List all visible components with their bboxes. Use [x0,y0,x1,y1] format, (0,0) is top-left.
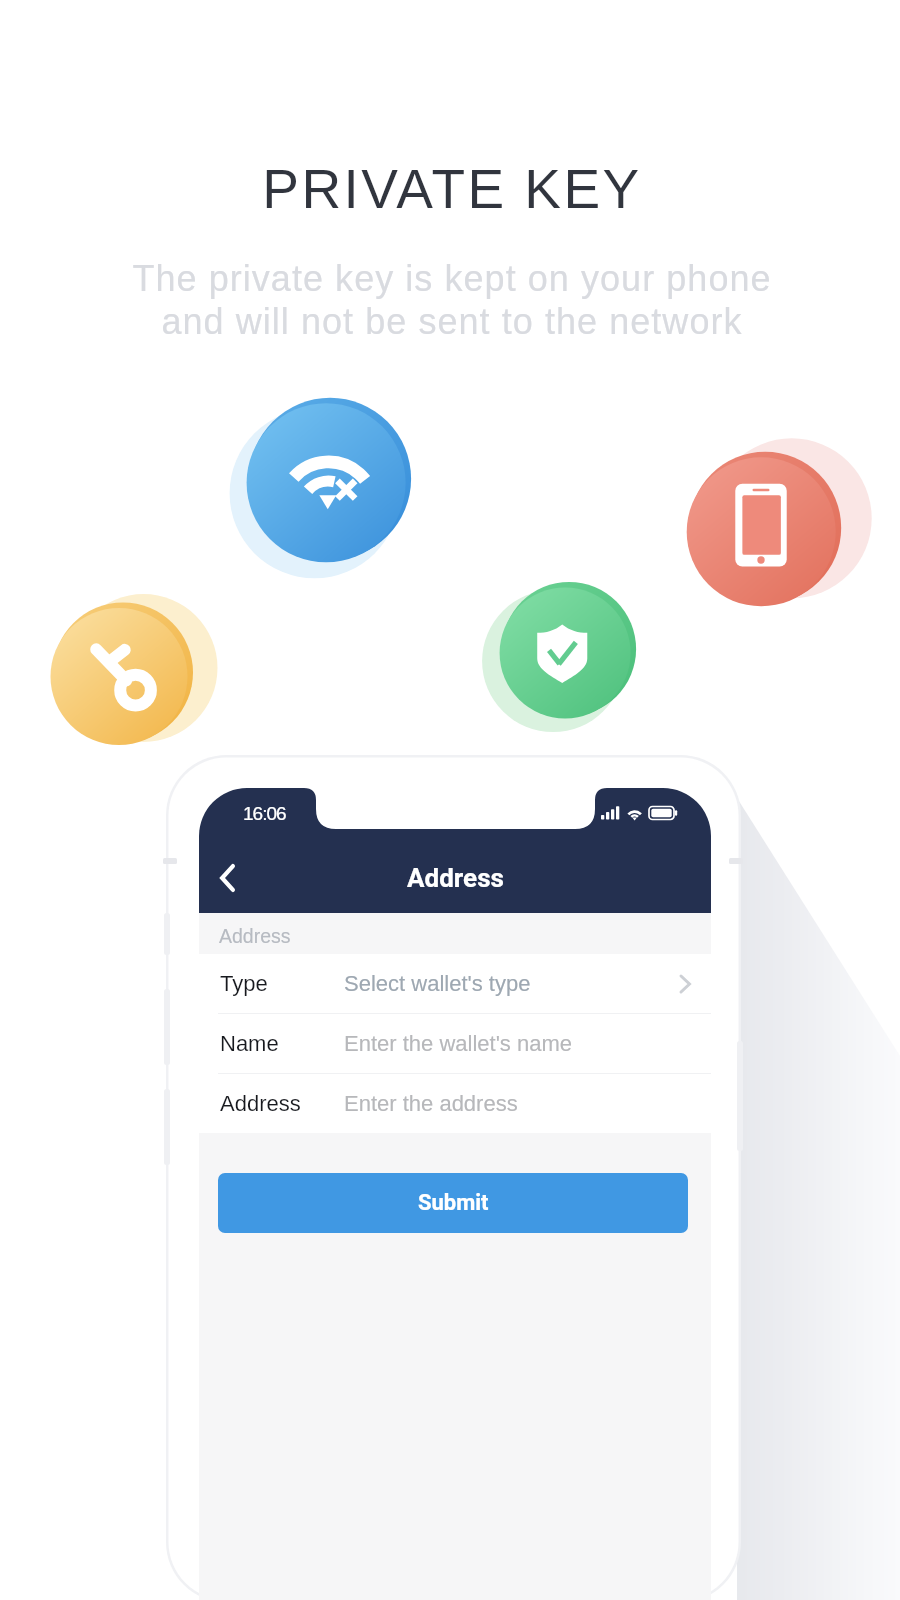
staticText: Select wallet's type [344,971,531,996]
button[interactable]: Type [199,954,711,1013]
staticText: Address [407,863,504,893]
staticText: The private key is kept on your phone an… [2,258,900,342]
button[interactable]: Name [199,1014,711,1073]
staticText: PRIVATE KEY [2,158,900,219]
staticText: Type [220,971,268,996]
button[interactable]: Submit [218,1173,688,1233]
staticText: Address [219,925,291,947]
button[interactable]: Address [199,1074,711,1133]
staticText: Enter the address [344,1091,518,1116]
staticText: 16:06 [243,803,286,824]
staticText: Enter the wallet's name [344,1031,572,1056]
staticText: Address [220,1091,301,1116]
staticText: Name [220,1031,279,1056]
staticText: Submit [418,1190,489,1216]
button[interactable]: Back [199,848,256,908]
